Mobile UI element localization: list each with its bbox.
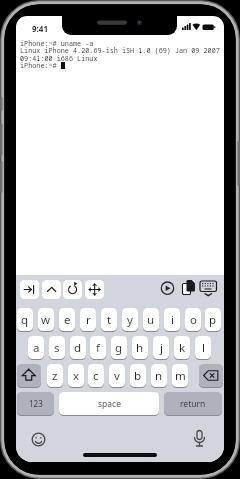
staticText: b [134,368,142,384]
button[interactable]: e [59,308,75,331]
button[interactable]: r [80,308,96,331]
button[interactable]: k [174,336,190,359]
staticText: z [52,368,58,384]
button[interactable]: a [28,336,44,359]
button[interactable]: b [130,364,146,387]
staticText: u [147,312,155,328]
button[interactable]: i [164,308,180,331]
button[interactable]: p [205,308,221,331]
staticText: iPhone:~# [20,61,57,70]
staticText: space [98,398,121,410]
button[interactable]: l [195,336,211,359]
button[interactable] [85,280,104,299]
button[interactable]: f [90,336,106,359]
button[interactable]: n [151,364,167,387]
button[interactable] [30,431,47,448]
button[interactable] [63,280,82,299]
button[interactable]: 123 [17,392,54,415]
staticText: w [41,312,51,328]
button[interactable]: v [109,364,125,387]
staticText: l [202,340,205,356]
button[interactable] [181,279,197,296]
button[interactable] [20,280,39,299]
staticText: x [73,368,80,384]
staticText: e [64,312,71,328]
staticText: return [180,398,206,410]
staticText: a [33,340,40,356]
staticText: h [136,340,144,356]
button[interactable]: u [143,308,159,331]
staticText: 09:41:00 i686 Linux [20,54,98,63]
button[interactable]: q [17,308,33,331]
staticText: y [127,312,133,328]
staticText: d [74,340,82,356]
staticText: q [21,312,29,328]
button[interactable]: w [38,308,54,331]
button[interactable]: g [111,336,127,359]
staticText: k [179,340,186,356]
staticText: s [54,340,60,356]
staticText: 123 [29,398,43,409]
button[interactable]: o [185,308,201,331]
button[interactable]: y [122,308,138,331]
button[interactable] [42,280,61,299]
button[interactable]: z [47,364,63,387]
button[interactable]: s [49,336,65,359]
staticText: 9:41 [32,23,48,34]
button[interactable] [160,280,176,296]
button[interactable]: x [68,364,84,387]
staticText: r [86,312,91,328]
staticText: p [209,312,217,328]
button[interactable] [17,364,41,387]
button[interactable]: m [172,364,188,387]
staticText: m [175,368,186,384]
button[interactable]: h [132,336,148,359]
staticText: f [96,340,100,356]
button[interactable] [191,429,208,449]
staticText: c [93,368,99,384]
button[interactable]: j [153,336,169,359]
button[interactable] [199,364,223,387]
button[interactable]: d [70,336,86,359]
staticText: v [114,368,120,384]
staticText: o [190,312,197,328]
button[interactable] [199,279,218,297]
button[interactable]: t [101,308,117,331]
staticText: n [155,368,163,384]
staticText: iPhone:~# uname -a [20,39,94,48]
staticText: Linux iPhone 4.20.69-ish iSH 1.0 (69) Ja… [20,46,220,55]
button[interactable]: space [59,392,159,415]
button[interactable]: return [164,392,222,415]
staticText: t [107,312,112,328]
staticText: j [160,340,163,356]
button[interactable]: c [88,364,104,387]
staticText: i [171,312,174,328]
staticText: g [115,340,123,356]
